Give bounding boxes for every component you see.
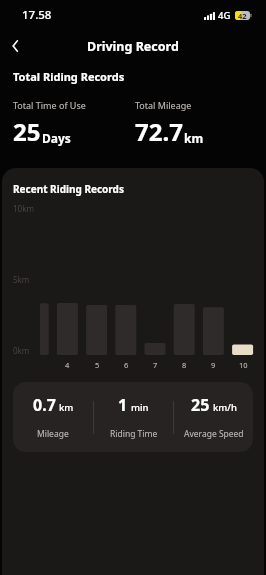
staticText: 42 — [238, 11, 247, 20]
staticText: 10 — [239, 360, 248, 370]
staticText: 25 — [13, 115, 41, 148]
staticText: Total Time of Use — [13, 99, 86, 111]
staticText: Driving Record — [87, 38, 179, 55]
staticText: Days — [42, 130, 71, 146]
staticText: km/h — [213, 401, 237, 414]
staticText: 8 — [182, 360, 187, 370]
staticText: Average Speed — [184, 428, 244, 440]
staticText: 9 — [211, 360, 216, 370]
staticText: Total Riding Records — [13, 69, 125, 84]
button[interactable]: 1 — [94, 394, 173, 440]
staticText: min — [131, 401, 149, 414]
staticText: 5km — [13, 274, 30, 285]
staticText: km — [184, 130, 204, 146]
staticText: 7 — [153, 360, 158, 370]
staticText: 0.7 — [33, 394, 56, 416]
staticText: km — [59, 401, 74, 414]
button[interactable]: Back — [0, 30, 32, 62]
staticText: 6 — [124, 360, 129, 370]
button[interactable]: 25 — [174, 394, 253, 440]
staticText: Total Mileage — [135, 99, 192, 111]
button[interactable]: 0.7 — [13, 394, 93, 440]
staticText: 0km — [13, 345, 30, 356]
staticText: 10km — [13, 203, 34, 214]
staticText: Recent Riding Records — [13, 182, 124, 196]
staticText: 72.7 — [135, 115, 183, 148]
staticText: Riding Time — [110, 428, 158, 440]
staticText: 5 — [95, 360, 100, 370]
staticText: 1 — [118, 394, 128, 416]
staticText: 4 — [65, 360, 70, 370]
staticText: Mileage — [37, 428, 69, 440]
staticText: 17.58 — [22, 7, 52, 23]
staticText: 4G — [218, 9, 231, 22]
staticText: 25 — [191, 394, 210, 416]
